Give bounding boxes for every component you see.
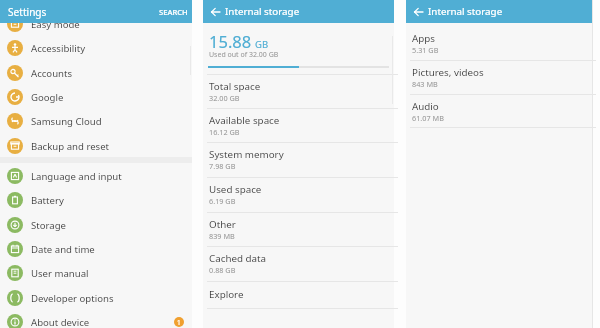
button[interactable]: Explore [203, 281, 394, 308]
staticText: GB [255, 38, 269, 51]
staticText: SEARCH [159, 7, 188, 17]
staticText: Accessibility [31, 42, 86, 55]
button[interactable]: Audio [406, 94, 592, 127]
staticText: Audio [412, 100, 439, 113]
staticText: Cached data [209, 252, 267, 265]
staticText: 61.07 MB [412, 113, 444, 123]
button[interactable]: System memory [203, 142, 394, 177]
staticText: 1 [177, 318, 181, 327]
staticText: Settings [8, 5, 47, 19]
button[interactable]: SEARCH [154, 0, 192, 23]
button[interactable]: Back [409, 0, 427, 23]
staticText: Internal storage [225, 5, 300, 18]
staticText: Total space [209, 80, 261, 93]
staticText: 7.98 GB [209, 161, 236, 171]
staticText: Other [209, 218, 236, 231]
staticText: 15.88 [209, 30, 252, 52]
button[interactable]: Storage [0, 213, 192, 237]
staticText: About device [31, 316, 90, 328]
staticText: Accounts [31, 67, 73, 80]
staticText: Battery [31, 194, 64, 207]
staticText: Pictures, videos [412, 66, 484, 79]
staticText: Developer options [31, 292, 114, 305]
button[interactable]: Easy mode [0, 12, 192, 36]
staticText: 0.88 GB [209, 265, 236, 275]
button[interactable]: Cached data [203, 246, 394, 281]
staticText: Storage [31, 219, 66, 232]
staticText: Used out of 32.00 GB [209, 50, 279, 60]
button[interactable]: Apps [406, 26, 592, 60]
staticText: 5.31 GB [412, 45, 439, 55]
button[interactable]: User manual [0, 261, 192, 285]
staticText: System memory [209, 148, 284, 161]
staticText: 843 MB [412, 79, 438, 89]
button[interactable]: Backup and reset [0, 134, 192, 158]
button[interactable]: Used space [203, 177, 394, 212]
staticText: Backup and reset [31, 140, 110, 153]
staticText: Date and time [31, 243, 95, 256]
button[interactable]: Date and time [0, 237, 192, 261]
button[interactable]: Battery [0, 188, 192, 212]
staticText: Samsung Cloud [31, 115, 102, 128]
staticText: Explore [209, 288, 244, 301]
button[interactable]: Back [206, 0, 224, 23]
staticText: Easy mode [31, 18, 80, 31]
button[interactable]: Available space [203, 108, 394, 142]
button[interactable]: Total space [203, 74, 394, 108]
button[interactable]: Accessibility [0, 36, 192, 60]
button[interactable]: Pictures, videos [406, 60, 592, 94]
button[interactable]: Other [203, 212, 394, 246]
staticText: 16.12 GB [209, 127, 240, 137]
staticText: Language and input [31, 170, 122, 183]
staticText: 839 MB [209, 231, 235, 241]
staticText: User manual [31, 267, 89, 280]
button[interactable]: Accounts [0, 61, 192, 85]
button[interactable]: Language and input [0, 164, 192, 188]
staticText: Available space [209, 114, 280, 127]
staticText: Apps [412, 32, 436, 45]
staticText: Google [31, 91, 64, 104]
staticText: Used space [209, 183, 262, 196]
button[interactable]: Samsung Cloud [0, 109, 192, 133]
staticText: 6.19 GB [209, 196, 236, 206]
staticText: 32.00 GB [209, 93, 240, 103]
button[interactable]: Developer options [0, 286, 192, 310]
button[interactable]: About device [0, 310, 192, 328]
staticText: Internal storage [428, 5, 503, 18]
button[interactable]: Google [0, 85, 192, 109]
